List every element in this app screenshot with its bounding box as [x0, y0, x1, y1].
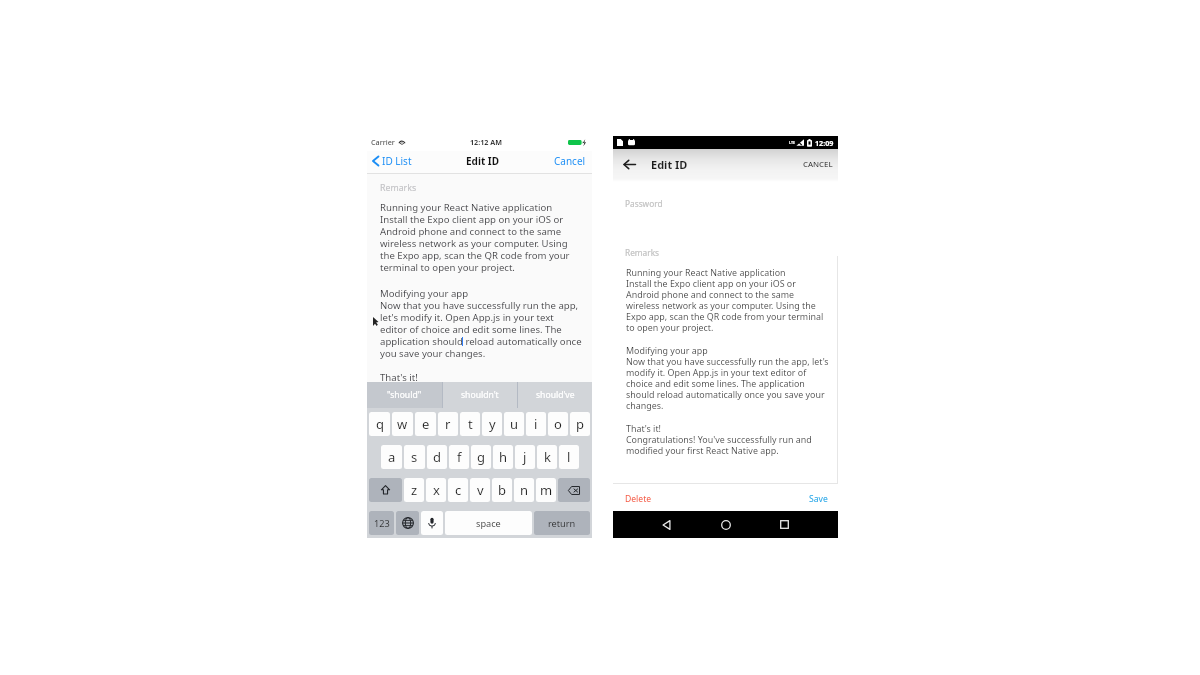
- staticText: return: [548, 517, 576, 530]
- staticText: 123: [374, 517, 390, 530]
- button[interactable]: t: [460, 412, 480, 436]
- button[interactable]: Cancel: [552, 154, 586, 168]
- staticText: Running your React Native application In…: [380, 201, 570, 274]
- staticText: v: [477, 481, 484, 499]
- button[interactable]: Dictate: [421, 511, 443, 535]
- staticText: z: [411, 481, 418, 499]
- staticText: d: [433, 448, 441, 466]
- button[interactable]: o: [548, 412, 568, 436]
- staticText: Remarks: [625, 247, 660, 258]
- button[interactable]: ID List: [372, 154, 414, 168]
- button[interactable]: space: [445, 511, 532, 535]
- button[interactable]: y: [482, 412, 502, 436]
- staticText: Running your React Native application In…: [626, 266, 824, 333]
- button[interactable]: Back: [637, 511, 696, 538]
- staticText: i: [534, 415, 538, 433]
- staticText: That's it!: [380, 371, 418, 384]
- button[interactable]: Delete: [625, 490, 652, 508]
- button[interactable]: shouldn't: [443, 382, 517, 408]
- staticText: 12:12 AM: [470, 137, 503, 147]
- button[interactable]: g: [471, 445, 491, 469]
- staticText: m: [540, 481, 553, 499]
- staticText: shouldn't: [461, 389, 499, 401]
- staticText: Edit ID: [466, 154, 500, 168]
- staticText: y: [489, 415, 496, 433]
- staticText: Edit ID: [651, 157, 688, 172]
- staticText: p: [576, 415, 584, 433]
- staticText: should've: [536, 389, 575, 401]
- button[interactable]: f: [449, 445, 469, 469]
- staticText: "should": [387, 389, 422, 401]
- staticText: n: [520, 481, 529, 499]
- staticText: c: [455, 481, 462, 499]
- button[interactable]: i: [526, 412, 546, 436]
- button[interactable]: v: [470, 478, 490, 502]
- button[interactable]: j: [515, 445, 535, 469]
- button[interactable]: CANCEL: [802, 156, 834, 173]
- staticText: u: [510, 415, 519, 433]
- staticText: Save: [809, 493, 828, 505]
- staticText: f: [457, 448, 462, 466]
- staticText: CANCEL: [803, 159, 833, 170]
- button[interactable]: 123: [369, 511, 394, 535]
- button[interactable]: Change keyboard: [396, 511, 419, 535]
- staticText: l: [567, 448, 571, 466]
- button[interactable]: Save: [809, 490, 828, 508]
- button[interactable]: Shift: [369, 478, 402, 502]
- button[interactable]: u: [504, 412, 524, 436]
- staticText: x: [433, 481, 440, 499]
- staticText: j: [523, 448, 527, 466]
- staticText: w: [397, 415, 408, 433]
- button[interactable]: b: [492, 478, 512, 502]
- button[interactable]: d: [427, 445, 447, 469]
- button[interactable]: Home: [696, 511, 755, 538]
- staticText: q: [376, 415, 384, 433]
- button[interactable]: p: [570, 412, 590, 436]
- button[interactable]: c: [448, 478, 468, 502]
- button[interactable]: e: [415, 412, 436, 436]
- button[interactable]: return: [534, 511, 590, 535]
- staticText: o: [554, 415, 562, 433]
- staticText: s: [411, 448, 418, 466]
- staticText: Modifying your app Now that you have suc…: [626, 344, 829, 411]
- staticText: t: [468, 415, 473, 433]
- button[interactable]: "should": [367, 382, 442, 408]
- button[interactable]: Back: [622, 157, 636, 171]
- staticText: 12:09: [815, 138, 834, 148]
- staticText: k: [544, 448, 551, 466]
- staticText: a: [388, 448, 396, 466]
- button[interactable]: z: [404, 478, 424, 502]
- button[interactable]: w: [392, 412, 413, 436]
- staticText: Modifying your app Now that you have suc…: [380, 287, 582, 360]
- button[interactable]: h: [493, 445, 513, 469]
- staticText: g: [477, 448, 485, 466]
- staticText: r: [445, 415, 451, 433]
- staticText: h: [499, 448, 508, 466]
- button[interactable]: m: [536, 478, 556, 502]
- button[interactable]: should've: [518, 382, 592, 408]
- staticText: LTE: [789, 140, 796, 145]
- staticText: ID List: [382, 154, 412, 168]
- button[interactable]: Recents: [755, 511, 814, 538]
- staticText: Remarks: [380, 182, 417, 194]
- staticText: b: [498, 481, 506, 499]
- staticText: Cancel: [554, 154, 586, 168]
- button[interactable]: a: [381, 445, 402, 469]
- staticText: Delete: [625, 493, 652, 505]
- button[interactable]: k: [537, 445, 557, 469]
- staticText: That's it! Congratulations! You've succe…: [626, 422, 812, 456]
- button[interactable]: x: [426, 478, 446, 502]
- staticText: Password: [625, 198, 663, 209]
- button[interactable]: q: [369, 412, 390, 436]
- button[interactable]: Backspace: [558, 478, 590, 502]
- button[interactable]: r: [438, 412, 458, 436]
- button[interactable]: s: [404, 445, 425, 469]
- staticText: space: [476, 517, 501, 530]
- button[interactable]: l: [559, 445, 579, 469]
- button[interactable]: n: [514, 478, 534, 502]
- staticText: Carrier: [371, 137, 395, 147]
- staticText: e: [422, 415, 430, 433]
